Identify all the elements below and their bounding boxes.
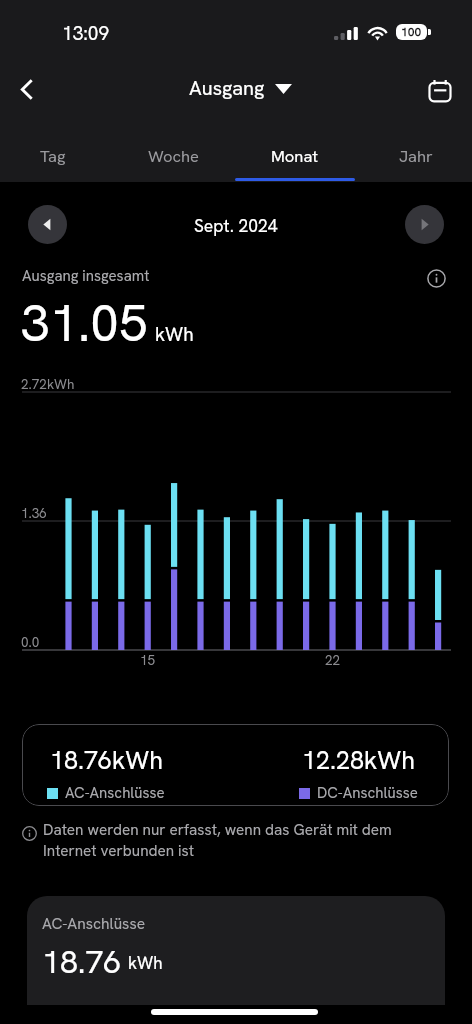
staticText: 18.76	[42, 941, 122, 983]
staticText: 31.05	[21, 290, 148, 356]
button[interactable]: Vorheriger Monat	[28, 205, 67, 244]
button[interactable]: Jahr	[355, 122, 472, 182]
staticText: kWh	[155, 322, 194, 347]
staticText: AC-Anschlüsse	[42, 913, 146, 933]
staticText: 18.76kWh	[50, 744, 163, 777]
button[interactable]: AC-Anschlüsse	[27, 896, 445, 1005]
button[interactable]: Info	[424, 266, 448, 290]
staticText: Ausgang	[189, 75, 265, 101]
staticText: Monat	[271, 145, 319, 166]
button[interactable]: Woche	[113, 122, 234, 182]
button[interactable]: 18.76kWh	[22, 724, 449, 806]
staticText: 13:09	[62, 21, 110, 46]
staticText: 22	[325, 651, 341, 669]
button[interactable]: Monat	[234, 122, 355, 182]
staticText: Daten werden nur erfasst, wenn das Gerät…	[43, 820, 392, 861]
staticText: Jahr	[399, 145, 433, 166]
staticText: 1.36	[21, 504, 47, 522]
staticText: 15	[140, 651, 156, 669]
button[interactable]: Kalender	[417, 68, 462, 113]
staticText: 0.0	[21, 633, 40, 651]
button[interactable]: Zurück	[4, 67, 49, 112]
staticText: Tag	[40, 145, 66, 166]
staticText: 2.72kWh	[21, 375, 75, 393]
staticText: Sept. 2024	[194, 214, 278, 237]
staticText: 100	[401, 24, 422, 40]
button[interactable]: Tag	[0, 122, 113, 182]
staticText: 12.28kWh	[302, 744, 415, 777]
button[interactable]: Ausgang	[189, 75, 292, 101]
staticText: AC-Anschlüsse	[65, 783, 165, 803]
staticText: kWh	[128, 952, 163, 974]
staticText: DC-Anschlüsse	[317, 783, 418, 803]
staticText: Woche	[148, 145, 199, 166]
button[interactable]: Nächster Monat	[405, 205, 444, 244]
staticText: Ausgang insgesamt	[22, 266, 150, 286]
